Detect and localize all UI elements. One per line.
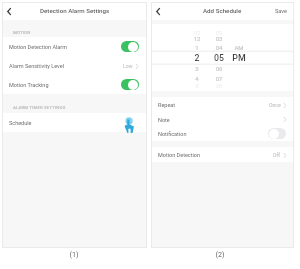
button[interactable]: 04 (205, 44, 233, 51)
button[interactable]: Switch on (121, 41, 139, 52)
staticText: 06 (205, 65, 233, 72)
staticText: Motion Tracking (9, 82, 49, 88)
button[interactable]: 2 (183, 53, 211, 63)
button[interactable]: 07 (205, 75, 233, 82)
staticText: Schedule (9, 120, 32, 126)
button[interactable]: Switch off (268, 128, 286, 139)
staticText: Motion Detection (158, 152, 201, 158)
button[interactable]: 12 (183, 35, 211, 42)
staticText: Motion Detection Alarm (9, 44, 68, 50)
staticText: Note (158, 117, 170, 123)
button[interactable]: 06 (205, 65, 233, 72)
staticText: 07 (205, 75, 233, 82)
button[interactable]: 3 (183, 65, 211, 72)
staticText: Notification (158, 131, 187, 137)
button[interactable]: Motion Detection Alarm (2, 37, 147, 56)
button[interactable]: PM (225, 53, 253, 63)
button[interactable]: Tap indicator (124, 118, 135, 133)
button[interactable]: 03 (205, 35, 233, 42)
button[interactable]: Notification (151, 126, 294, 141)
button[interactable]: AM (225, 44, 253, 51)
button[interactable]: Back (152, 4, 163, 18)
staticText: 03 (205, 35, 233, 42)
staticText: AM (225, 44, 253, 51)
staticText: 3 (183, 65, 211, 72)
button[interactable]: 05 (205, 53, 233, 63)
button[interactable]: 1 (183, 44, 211, 51)
staticText: (1) (59, 250, 89, 258)
staticText: Detection Alarm Settings (40, 7, 110, 14)
staticText: Repeat (158, 102, 176, 108)
staticText: Once (269, 102, 281, 108)
staticText: ALARM TIMER SETTINGS (13, 105, 66, 110)
staticText: Low (123, 63, 133, 69)
button[interactable]: Repeat (151, 97, 294, 112)
staticText: Add Schedule (203, 7, 242, 14)
staticText: 1 (183, 44, 211, 51)
button[interactable]: Save (270, 5, 294, 18)
staticText: 2 (183, 53, 211, 63)
staticText: (2) (205, 250, 235, 258)
staticText: PM (225, 53, 253, 63)
button[interactable]: Motion Tracking (2, 75, 147, 94)
staticText: Save (275, 8, 287, 15)
button[interactable]: Switch on (121, 79, 139, 90)
staticText: MOTION (13, 30, 31, 35)
staticText: 4 (183, 75, 211, 82)
staticText: 04 (205, 44, 233, 51)
button[interactable]: Motion Detection (151, 147, 294, 162)
button[interactable]: Back (3, 4, 14, 18)
button[interactable]: Note (151, 112, 294, 127)
button[interactable]: Alarm Sensitivity Level (2, 56, 147, 75)
staticText: 05 (205, 53, 233, 63)
staticText: Off (273, 152, 281, 158)
button[interactable]: 4 (183, 75, 211, 82)
staticText: 12 (183, 35, 211, 42)
staticText: Alarm Sensitivity Level (9, 63, 64, 69)
button[interactable]: Schedule (2, 113, 147, 132)
